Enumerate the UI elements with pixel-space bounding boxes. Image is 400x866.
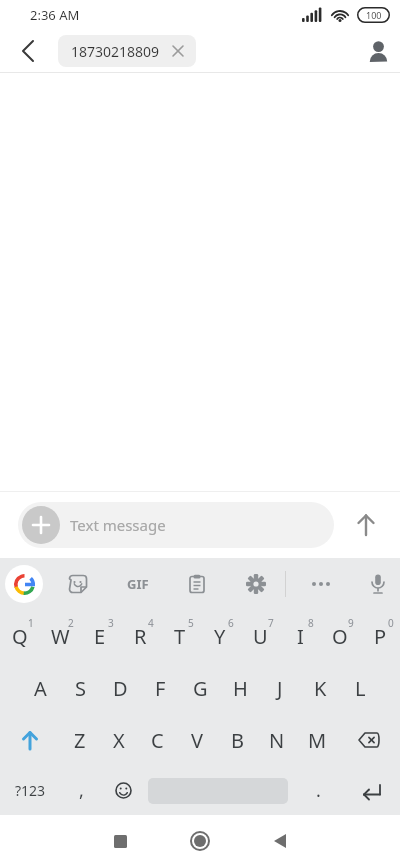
staticText: 8 bbox=[308, 616, 314, 630]
button[interactable]: GIF bbox=[108, 558, 167, 610]
button[interactable]: M bbox=[297, 714, 337, 766]
button[interactable]: N bbox=[257, 714, 297, 766]
button[interactable]: B bbox=[217, 714, 257, 766]
button[interactable] bbox=[226, 558, 285, 610]
button[interactable] bbox=[343, 766, 400, 815]
button[interactable]: K bbox=[300, 662, 340, 714]
button[interactable]: A bbox=[20, 662, 60, 714]
button[interactable]: D bbox=[100, 662, 140, 714]
button[interactable] bbox=[362, 35, 394, 67]
button[interactable]: G bbox=[180, 662, 220, 714]
button[interactable]: S bbox=[60, 662, 100, 714]
staticText: O bbox=[332, 623, 348, 650]
staticText: P bbox=[374, 623, 387, 650]
staticText: Text message bbox=[70, 515, 166, 535]
staticText: 100 bbox=[366, 9, 382, 21]
button[interactable]: H bbox=[220, 662, 260, 714]
staticText: V bbox=[191, 727, 203, 754]
staticText: W bbox=[51, 623, 70, 650]
staticText: M bbox=[308, 727, 327, 754]
button[interactable]: R bbox=[120, 610, 160, 662]
staticText: C bbox=[151, 727, 164, 754]
staticText: 1 bbox=[28, 616, 34, 630]
button[interactable]: U bbox=[240, 610, 280, 662]
button[interactable]: O bbox=[320, 610, 360, 662]
staticText: Q bbox=[12, 623, 28, 650]
staticText: I bbox=[297, 623, 304, 650]
button[interactable] bbox=[346, 505, 386, 545]
staticText: F bbox=[155, 675, 166, 702]
staticText: ?123 bbox=[15, 781, 46, 800]
button[interactable]: I bbox=[280, 610, 320, 662]
button[interactable] bbox=[0, 558, 48, 610]
button[interactable]: V bbox=[177, 714, 217, 766]
staticText: 9 bbox=[348, 616, 354, 630]
button[interactable] bbox=[12, 35, 44, 67]
staticText: 2:36 AM bbox=[30, 6, 80, 24]
staticText: S bbox=[75, 675, 86, 702]
button[interactable] bbox=[100, 821, 140, 861]
staticText: D bbox=[113, 675, 128, 702]
button[interactable] bbox=[167, 558, 226, 610]
staticText: Z bbox=[74, 727, 86, 754]
button[interactable] bbox=[286, 558, 356, 610]
button[interactable]: X bbox=[99, 714, 138, 766]
button[interactable]: ?123 bbox=[0, 766, 60, 815]
button[interactable]: E bbox=[80, 610, 120, 662]
staticText: R bbox=[134, 623, 147, 650]
staticText: 18730218809 bbox=[71, 42, 160, 61]
button[interactable]: L bbox=[340, 662, 380, 714]
button[interactable]: P bbox=[360, 610, 400, 662]
button[interactable]: , bbox=[60, 766, 103, 815]
button[interactable]: Z bbox=[60, 714, 99, 766]
staticText: G bbox=[193, 675, 208, 702]
button[interactable]: T bbox=[160, 610, 200, 662]
button[interactable] bbox=[103, 766, 143, 815]
staticText: 0 bbox=[388, 616, 394, 630]
button[interactable]: . bbox=[293, 766, 343, 815]
staticText: L bbox=[355, 675, 366, 702]
staticText: GIF bbox=[127, 575, 149, 593]
staticText: X bbox=[113, 727, 125, 754]
button[interactable]: F bbox=[140, 662, 180, 714]
button[interactable] bbox=[143, 766, 293, 815]
button[interactable] bbox=[22, 506, 60, 544]
staticText: . bbox=[316, 778, 321, 803]
staticText: N bbox=[269, 727, 285, 754]
staticText: 7 bbox=[268, 616, 274, 630]
button[interactable] bbox=[180, 821, 220, 861]
button[interactable]: C bbox=[138, 714, 177, 766]
staticText: 3 bbox=[108, 616, 114, 630]
staticText: , bbox=[79, 778, 84, 803]
staticText: Y bbox=[214, 623, 226, 650]
staticText: E bbox=[94, 623, 106, 650]
button[interactable] bbox=[260, 821, 300, 861]
button[interactable]: Q bbox=[0, 610, 40, 662]
button[interactable]: J bbox=[260, 662, 300, 714]
staticText: J bbox=[277, 675, 283, 702]
staticText: 5 bbox=[188, 616, 194, 630]
button[interactable]: Text message bbox=[18, 502, 334, 548]
staticText: H bbox=[233, 675, 248, 702]
button[interactable]: W bbox=[40, 610, 80, 662]
staticText: T bbox=[174, 623, 186, 650]
staticText: 6 bbox=[228, 616, 234, 630]
button[interactable] bbox=[0, 714, 60, 766]
staticText: A bbox=[34, 675, 47, 702]
staticText: B bbox=[231, 727, 244, 754]
staticText: 4 bbox=[148, 616, 154, 630]
staticText: 2 bbox=[68, 616, 74, 630]
button[interactable] bbox=[337, 714, 400, 766]
button[interactable]: 18730218809 bbox=[58, 35, 196, 67]
staticText: U bbox=[253, 623, 268, 650]
staticText: K bbox=[314, 675, 327, 702]
button[interactable] bbox=[356, 558, 400, 610]
button[interactable] bbox=[48, 558, 108, 610]
button[interactable]: Y bbox=[200, 610, 240, 662]
